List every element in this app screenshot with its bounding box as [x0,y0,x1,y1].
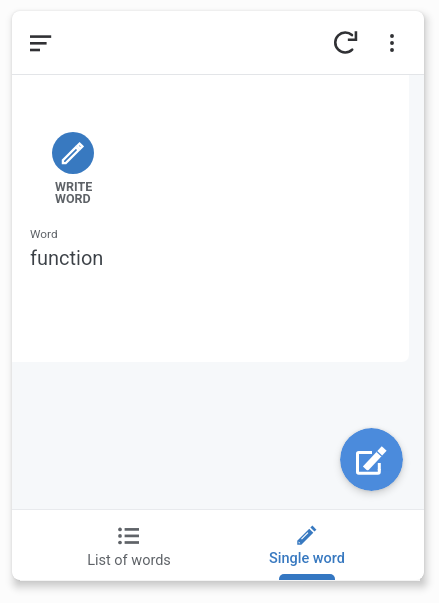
staticText: WRITE WORD [55,179,93,206]
staticText: Word [30,227,58,241]
staticText: Single word [269,550,345,567]
staticText: function [30,246,104,269]
button[interactable]: Write word [52,132,94,174]
button[interactable]: Sort [15,19,63,67]
button[interactable]: Refresh [320,19,368,67]
button[interactable]: More options [368,19,416,67]
button[interactable]: New word [340,428,403,491]
staticText: List of words [87,552,171,569]
button[interactable]: Single word [218,510,396,580]
button[interactable]: List of words [40,510,218,580]
